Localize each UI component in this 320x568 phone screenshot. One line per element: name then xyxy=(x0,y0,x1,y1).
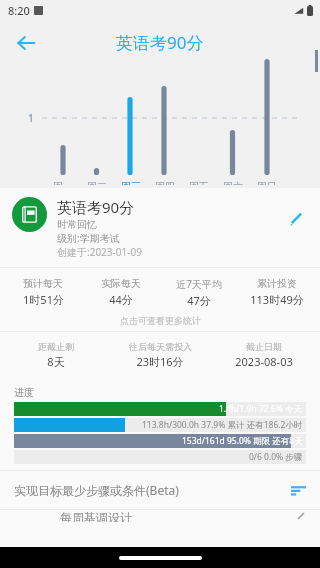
staticText: 1.4h/1.9h 72.6% 今天 xyxy=(219,403,303,415)
staticText: 英语考90分 xyxy=(116,31,204,54)
staticText: 周六 xyxy=(223,180,243,185)
staticText: 每周基调设计 xyxy=(60,510,296,522)
staticText: 8:20 xyxy=(8,3,30,18)
staticText: 实现目标最少步骤或条件(Beta) xyxy=(14,482,291,498)
staticText: 创建于:2023-01-09 xyxy=(57,245,142,259)
staticText: 周四 xyxy=(155,180,175,185)
staticText: 44分 xyxy=(109,292,133,307)
button[interactable]: 实现目标最少步骤或条件(Beta) xyxy=(0,471,320,509)
staticText: 周三 xyxy=(121,180,141,185)
other: More xyxy=(296,511,306,521)
button[interactable]: Back xyxy=(8,25,44,61)
staticText: 近7天平均 xyxy=(176,277,222,291)
button[interactable]: 英语考90分 xyxy=(0,188,320,267)
staticText: 周一 xyxy=(53,180,73,185)
staticText: 距截止剩 xyxy=(38,341,74,352)
staticText: 预计每天 xyxy=(23,277,63,290)
staticText: 时常回忆 xyxy=(57,218,97,231)
staticText: 23时16分 xyxy=(136,354,184,369)
staticText: 0/6 0.0% 步骤 xyxy=(249,451,303,463)
staticText: 周二 xyxy=(87,180,107,185)
staticText: 1 xyxy=(28,111,34,125)
staticText: 周五 xyxy=(189,180,209,185)
staticText: 113.8h/300.0h 37.9% 累计 还有186.2小时 xyxy=(142,419,303,431)
staticText: 1时51分 xyxy=(23,292,64,307)
staticText: 往后每天需投入 xyxy=(129,341,192,352)
staticText: 点击可查看更多统计 xyxy=(120,315,201,326)
button[interactable]: 预计每天 xyxy=(0,268,320,310)
staticText: 英语考90分 xyxy=(57,197,135,217)
staticText: 进度 xyxy=(14,386,34,399)
staticText: 47分 xyxy=(187,293,211,308)
staticText: 2023-08-03 xyxy=(235,354,293,369)
button[interactable]: Edit xyxy=(282,205,310,233)
staticText: 8天 xyxy=(47,354,65,369)
staticText: 周日 xyxy=(257,180,277,185)
staticText: 113时49分 xyxy=(250,292,304,307)
staticText: 153d/161d 95.0% 期限 还有8天 xyxy=(182,435,303,447)
button[interactable]: 每周基调设计 xyxy=(0,510,320,522)
button[interactable]: 距截止剩 xyxy=(0,332,320,378)
staticText: 累计投资 xyxy=(257,277,297,290)
staticText: 截止日期 xyxy=(246,341,282,352)
button[interactable]: 进度 xyxy=(0,386,320,464)
staticText: 级别:学期考试 xyxy=(57,231,120,245)
staticText: 实际每天 xyxy=(101,277,141,290)
